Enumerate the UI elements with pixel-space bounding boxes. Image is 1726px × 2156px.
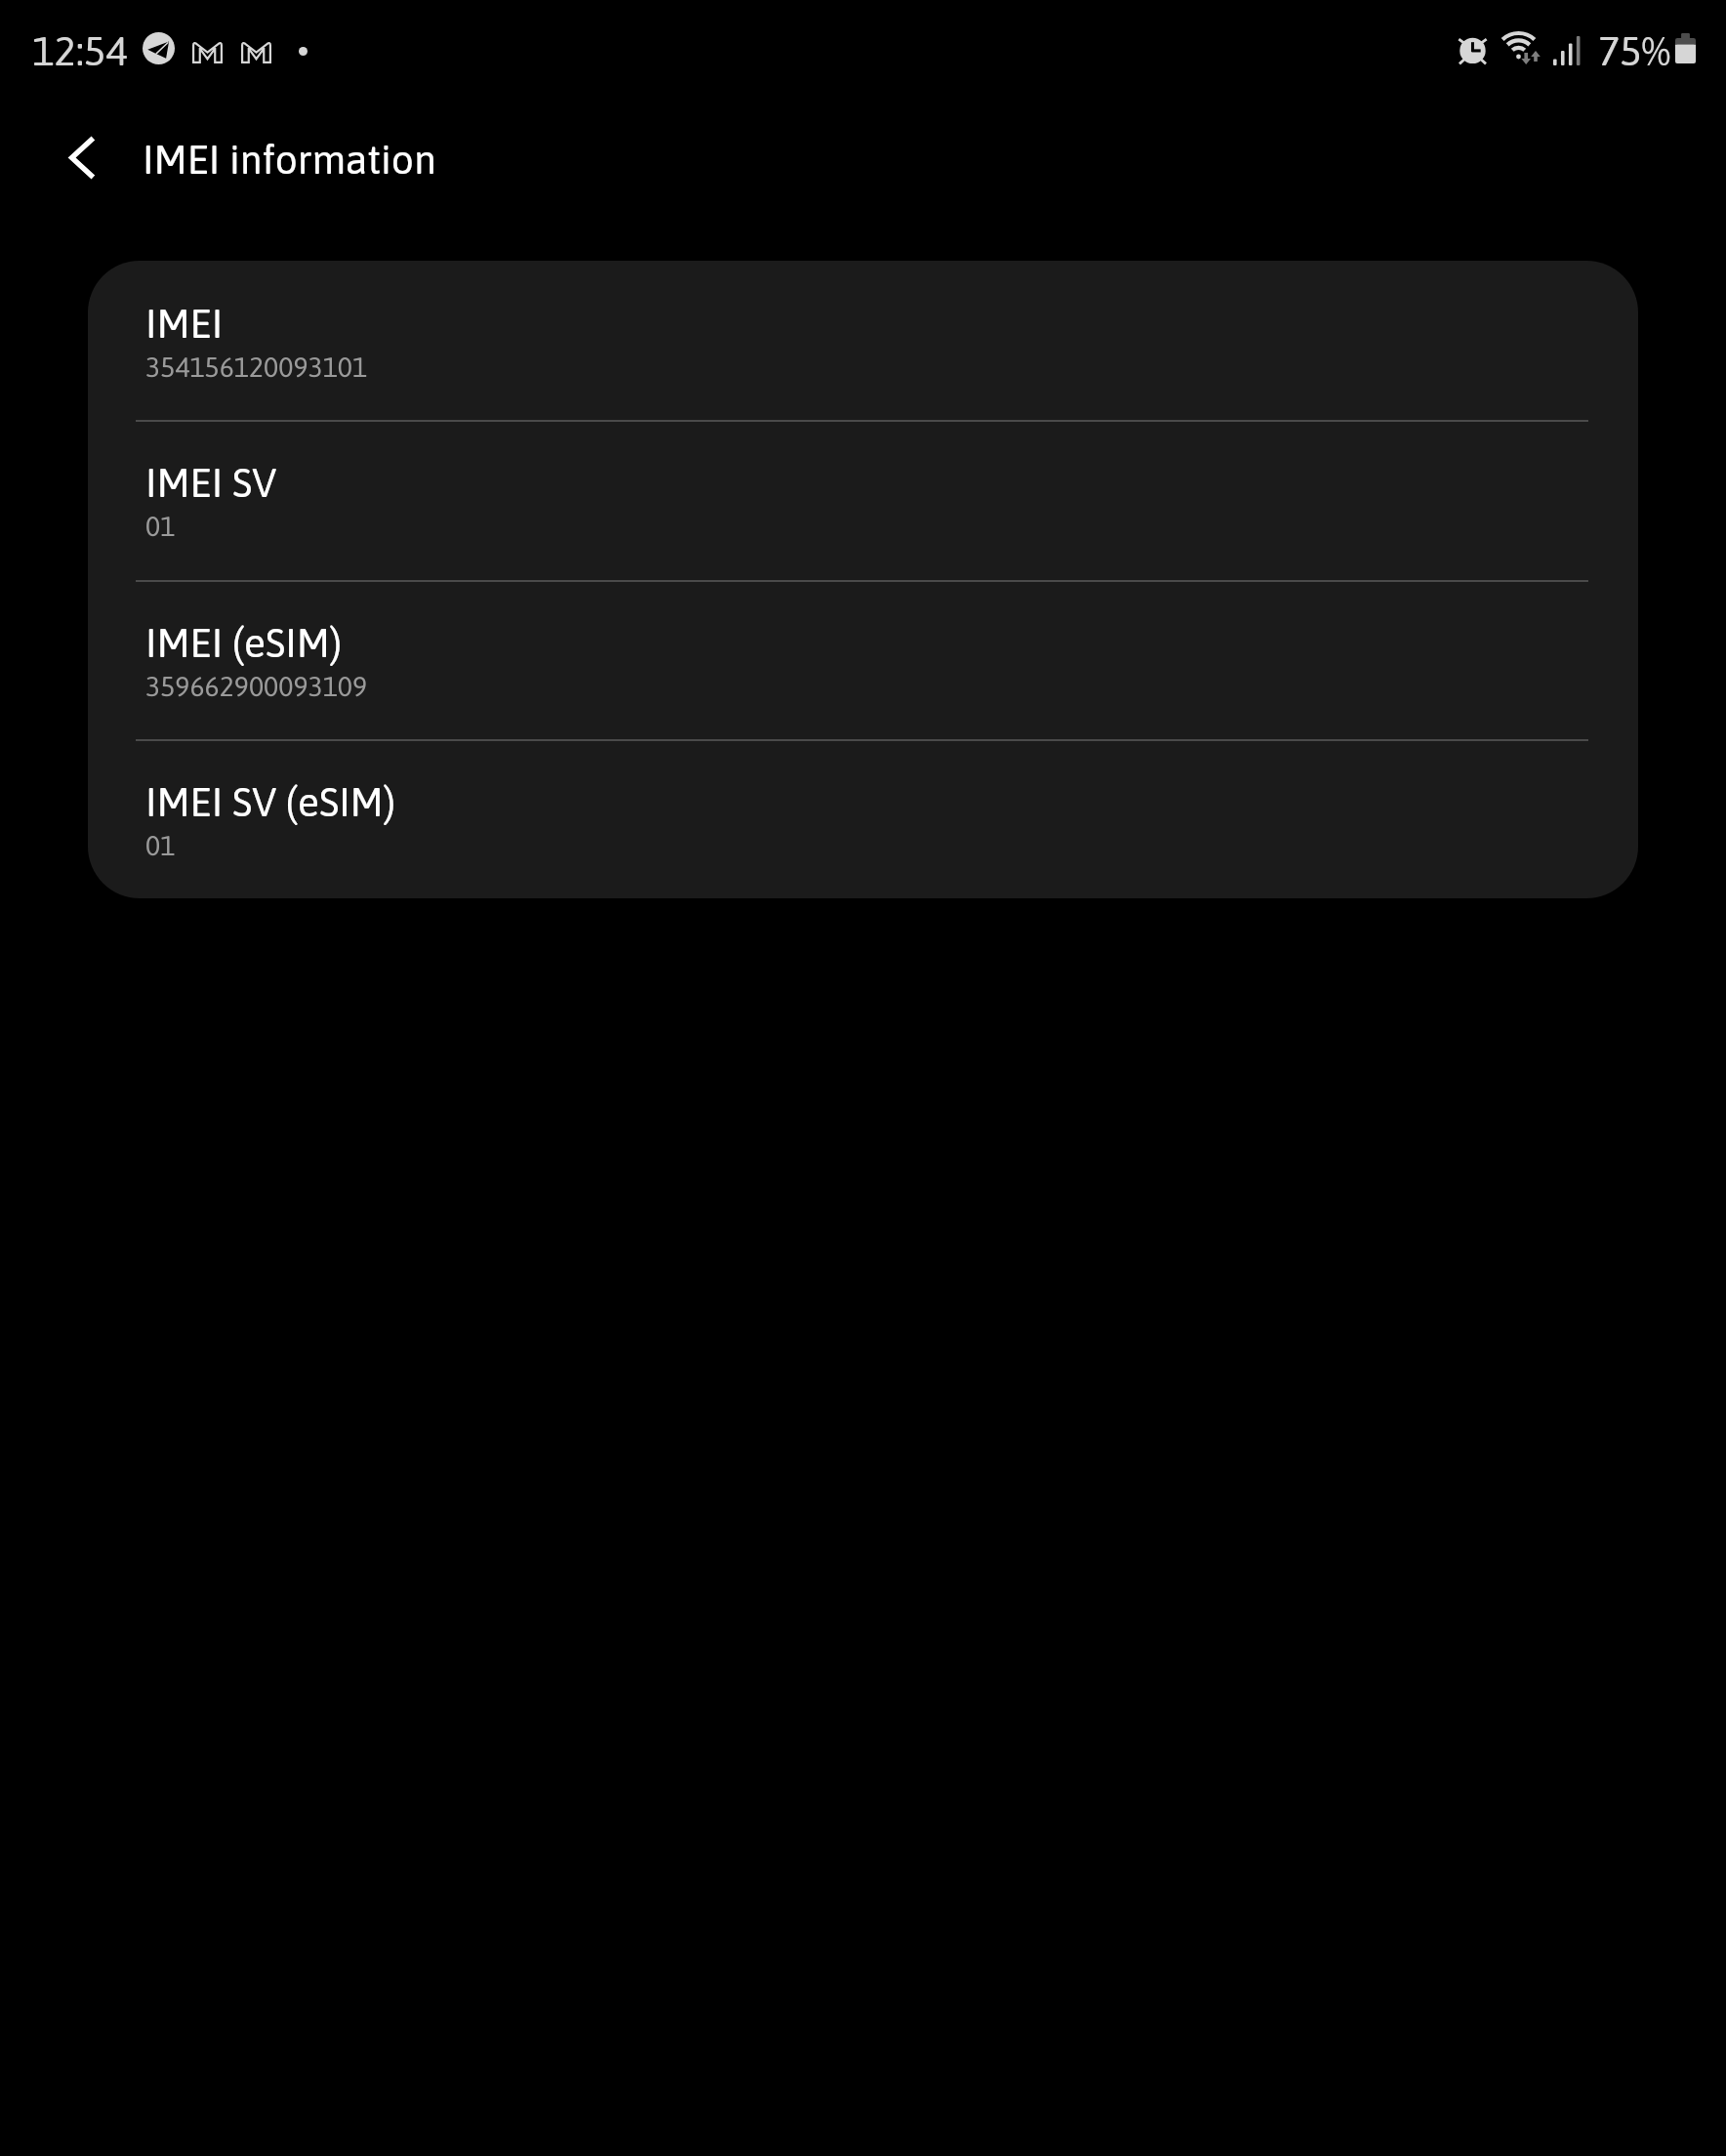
staticText: IMEI SV (eSIM) <box>145 779 395 824</box>
button[interactable]: IMEI SV <box>88 420 1638 579</box>
staticText: IMEI SV <box>145 460 277 505</box>
staticText: IMEI <box>145 301 224 346</box>
button[interactable]: IMEI <box>88 261 1638 420</box>
staticText: IMEI (eSIM) <box>145 620 342 665</box>
button[interactable]: IMEI SV (eSIM) <box>88 739 1638 898</box>
staticText: 359662900093109 <box>145 671 368 702</box>
staticText: 12:54 <box>32 27 128 74</box>
staticText: 354156120093101 <box>145 352 368 383</box>
staticText: 75% <box>1598 27 1670 74</box>
staticText: IMEI information <box>143 137 436 183</box>
staticText: 01 <box>145 830 176 861</box>
button[interactable]: IMEI (eSIM) <box>88 580 1638 739</box>
button[interactable]: Navigate up <box>26 101 138 214</box>
staticText: 01 <box>145 511 176 542</box>
